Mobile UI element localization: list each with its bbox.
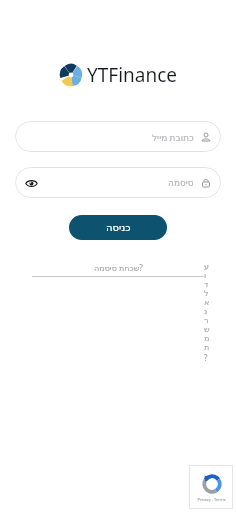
staticText: כתובת מייל (152, 131, 194, 143)
button[interactable]: כניסה (69, 215, 167, 240)
button[interactable]: כתובת מייל (15, 121, 221, 152)
button[interactable]: Show password (15, 167, 221, 198)
staticText: סיסמה (168, 178, 194, 188)
staticText: כניסה (106, 222, 131, 234)
button[interactable]: reCAPTCHA privacy and terms (189, 465, 233, 509)
button[interactable]: Show password (24, 176, 38, 190)
button[interactable]: שכחת סיסמה? (32, 262, 204, 277)
staticText: שכחת סיסמה? (94, 262, 143, 273)
staticText: Privacy - Terms (197, 497, 226, 502)
staticText: YTFinance (87, 62, 178, 88)
